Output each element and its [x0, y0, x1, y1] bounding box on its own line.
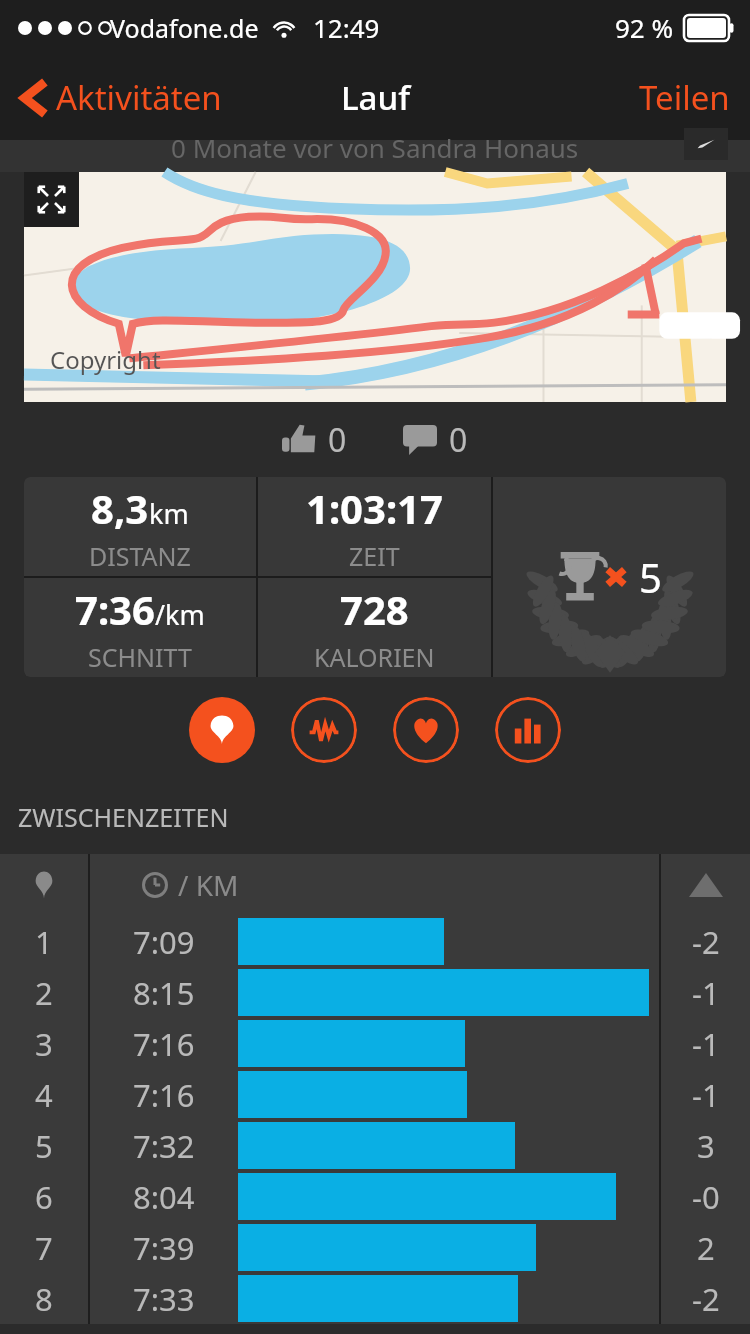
staticText: 7:16 — [133, 1074, 195, 1116]
staticText: 12:49 — [313, 10, 380, 45]
button[interactable]: 1 — [0, 916, 750, 967]
staticText: -2 — [692, 1278, 720, 1320]
staticText: 3 — [35, 1023, 53, 1065]
staticText: 7:36 — [75, 582, 155, 636]
button[interactable]: Auszeichnungen — [493, 477, 726, 677]
staticText: 7:09 — [133, 921, 195, 963]
staticText: 3 — [697, 1125, 715, 1167]
staticText: SCHNITT — [88, 640, 192, 674]
button[interactable]: Vollbild — [24, 172, 79, 227]
button[interactable]: Karte — [24, 172, 726, 402]
button[interactable]: 7:36 — [24, 578, 256, 677]
button[interactable]: Aktivitäten — [16, 69, 228, 126]
staticText: 5 — [639, 550, 662, 604]
staticText: /km — [155, 596, 205, 633]
staticText: Aktivitäten — [56, 75, 222, 120]
staticText: 4 — [35, 1074, 53, 1116]
staticText: ZWISCHENZEITEN — [18, 800, 229, 834]
staticText: 8,3 — [91, 481, 149, 535]
staticText: KALORIEN — [314, 640, 435, 674]
staticText: 8:15 — [133, 972, 195, 1014]
button[interactable]: 5 — [0, 1120, 750, 1171]
button[interactable]: 0 — [395, 412, 476, 468]
staticText: 7:32 — [133, 1125, 195, 1167]
staticText: 5 — [35, 1125, 53, 1167]
button[interactable]: Karte — [189, 697, 255, 763]
staticText: 0 Monate vor von Sandra Honaus — [171, 130, 579, 162]
button[interactable]: 728 — [258, 578, 491, 677]
staticText: 0 — [328, 418, 347, 462]
staticText: 8 — [35, 1278, 53, 1320]
staticText: 1 — [35, 921, 53, 963]
staticText: -1 — [692, 972, 720, 1014]
staticText: -1 — [692, 1074, 720, 1116]
button[interactable]: 7 — [0, 1222, 750, 1273]
staticText: 728 — [340, 582, 409, 636]
button[interactable]: 1:03:17 — [258, 477, 491, 576]
staticText: 1:03:17 — [306, 481, 443, 535]
staticText: ZEIT — [349, 539, 400, 573]
staticText: Teilen — [639, 75, 730, 120]
button[interactable]: 2 — [0, 967, 750, 1018]
button[interactable]: Herzfrequenz — [393, 697, 459, 763]
staticText: -2 — [692, 921, 720, 963]
staticText: Lauf — [341, 75, 410, 120]
staticText: km — [149, 495, 189, 532]
button[interactable]: Teilen — [631, 67, 738, 128]
button[interactable]: 8,3 — [24, 477, 256, 576]
staticText: 92 % — [615, 10, 674, 45]
staticText: DISTANZ — [89, 539, 191, 573]
staticText: 7:39 — [133, 1227, 195, 1269]
staticText: 7 — [35, 1227, 53, 1269]
staticText: Vodafone.de — [110, 11, 259, 45]
button[interactable]: 4 — [0, 1069, 750, 1120]
button[interactable]: 8 — [0, 1273, 750, 1324]
button[interactable]: 6 — [0, 1171, 750, 1222]
staticText: -0 — [692, 1176, 720, 1218]
button[interactable]: 0 — [274, 412, 355, 468]
staticText: -1 — [692, 1023, 720, 1065]
button[interactable]: Bearbeiten — [684, 128, 728, 160]
staticText: 2 — [697, 1227, 715, 1269]
button[interactable]: Tempo — [291, 697, 357, 763]
staticText: 8:04 — [133, 1176, 195, 1218]
staticText: 0 — [449, 418, 468, 462]
staticText: / KM — [178, 866, 239, 904]
staticText: 7:33 — [133, 1278, 195, 1320]
staticText: Copyright — [50, 343, 161, 376]
button[interactable]: Statistik — [495, 697, 561, 763]
staticText: 6 — [35, 1176, 53, 1218]
staticText: 7:16 — [133, 1023, 195, 1065]
button[interactable]: 3 — [0, 1018, 750, 1069]
staticText: 2 — [35, 972, 53, 1014]
